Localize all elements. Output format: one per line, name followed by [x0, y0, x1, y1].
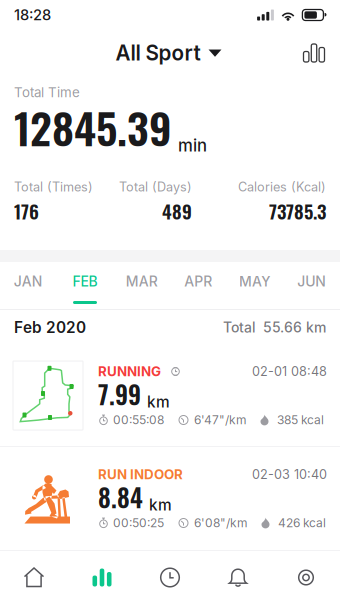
staticText: 385 kcal	[277, 413, 324, 427]
staticText: Feb 2020	[14, 318, 86, 337]
staticText: min	[178, 135, 207, 156]
staticText: 6'47"/km	[194, 413, 247, 427]
staticText: 18:28	[14, 6, 51, 24]
button[interactable]: Home	[0, 551, 68, 604]
staticText: 00:55:08	[113, 413, 164, 427]
staticText: JAN	[14, 273, 43, 290]
staticText: Total	[223, 319, 256, 336]
staticText: FEB	[72, 273, 97, 290]
staticText: All Sport	[115, 40, 200, 65]
staticText: RUNNING	[98, 363, 161, 379]
button[interactable]: JAN	[0, 262, 57, 309]
staticText: km	[147, 393, 170, 411]
staticText: 00:50:25	[113, 516, 164, 530]
button[interactable]: RUNNING	[0, 345, 340, 446]
staticText: 426 kcal	[278, 516, 326, 530]
staticText: 8.84	[98, 479, 143, 515]
staticText: 7.99	[98, 376, 141, 412]
staticText: Total Time	[14, 84, 80, 100]
staticText: Calories (Kcal)	[238, 179, 326, 195]
staticText: 489	[162, 197, 192, 225]
staticText: 73785.3	[269, 197, 326, 225]
staticText: 55.66 km	[263, 319, 326, 336]
staticText: 02-01 08:48	[252, 364, 327, 379]
staticText: MAY	[239, 273, 271, 290]
button[interactable]: Notifications	[204, 551, 272, 604]
button[interactable]: History	[136, 551, 204, 604]
staticText: MAR	[126, 273, 158, 290]
staticText: Total (Times)	[14, 179, 93, 195]
staticText: Total (Days)	[119, 179, 192, 195]
button[interactable]: FEB	[57, 262, 113, 309]
staticText: APR	[184, 273, 212, 290]
button[interactable]: APR	[170, 262, 227, 309]
button[interactable]: Statistics	[68, 551, 136, 604]
staticText: 176	[14, 197, 39, 225]
staticText: km	[149, 496, 172, 514]
button[interactable]: MAR	[113, 262, 170, 309]
button[interactable]: MAY	[227, 262, 283, 309]
staticText: 6'08"/km	[194, 516, 248, 530]
button[interactable]: JUN	[283, 262, 340, 309]
button[interactable]: Settings	[272, 551, 340, 604]
staticText: RUN INDOOR	[98, 466, 183, 482]
button[interactable]: Statistics	[291, 31, 337, 74]
staticText: JUN	[297, 273, 326, 290]
staticText: 02-03 10:40	[252, 467, 327, 482]
button[interactable]: RUN INDOOR	[0, 447, 340, 550]
button[interactable]: All Sport	[103, 30, 233, 75]
staticText: 12845.39	[14, 95, 172, 159]
